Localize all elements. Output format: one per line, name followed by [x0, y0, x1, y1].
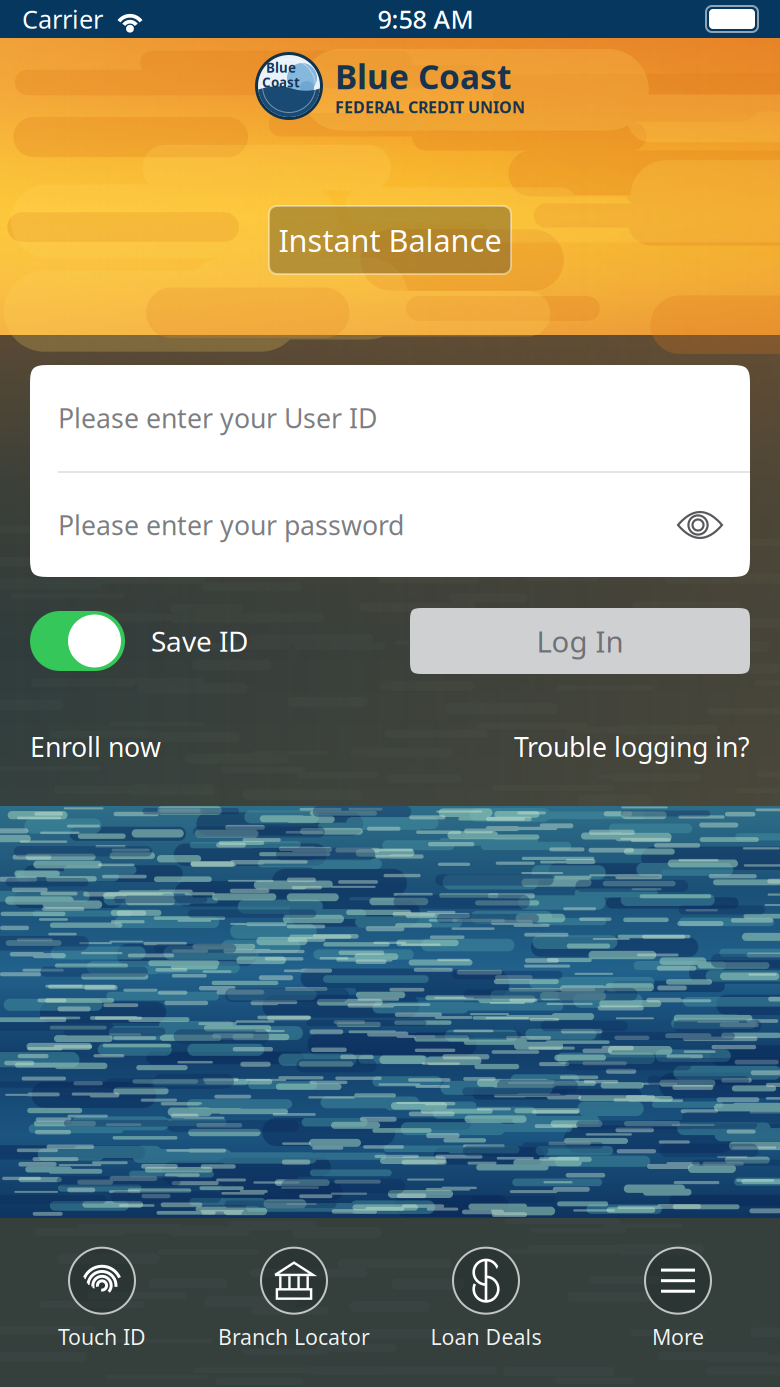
staticText: Loan Deals: [430, 1323, 541, 1351]
staticText: Enroll now: [30, 729, 161, 764]
button[interactable]: Branch Locator: [198, 1248, 390, 1351]
staticText: Trouble logging in?: [514, 729, 750, 764]
staticText: Log In: [536, 621, 623, 660]
staticText: Touch ID: [58, 1323, 146, 1351]
button[interactable]: Trouble logging in?: [514, 729, 750, 764]
staticText: Please enter your password: [58, 507, 404, 543]
button[interactable]: Touch ID: [6, 1248, 198, 1351]
button[interactable]: Please enter your password: [30, 473, 662, 577]
button[interactable]: Loan Deals: [390, 1248, 582, 1351]
staticText: Carrier: [22, 2, 103, 36]
staticText: More: [652, 1323, 704, 1351]
staticText: Branch Locator: [218, 1323, 370, 1351]
button[interactable]: More: [582, 1248, 774, 1351]
staticText: 9:58 AM: [377, 2, 473, 36]
button[interactable]: Please enter your User ID: [30, 365, 750, 471]
staticText: Save ID: [151, 622, 248, 660]
staticText: Coast: [262, 73, 300, 91]
button[interactable]: Save ID: [30, 611, 248, 671]
button[interactable]: Show password: [662, 473, 738, 577]
button[interactable]: Enroll now: [30, 729, 161, 764]
staticText: Blue Coast: [335, 54, 511, 98]
staticText: Blue: [266, 59, 296, 76]
staticText: FEDERAL CREDIT UNION: [335, 96, 525, 118]
staticText: Please enter your User ID: [58, 400, 377, 436]
button[interactable]: Instant Balance: [269, 206, 511, 274]
button[interactable]: Log In: [410, 608, 750, 674]
staticText: Instant Balance: [278, 220, 501, 260]
